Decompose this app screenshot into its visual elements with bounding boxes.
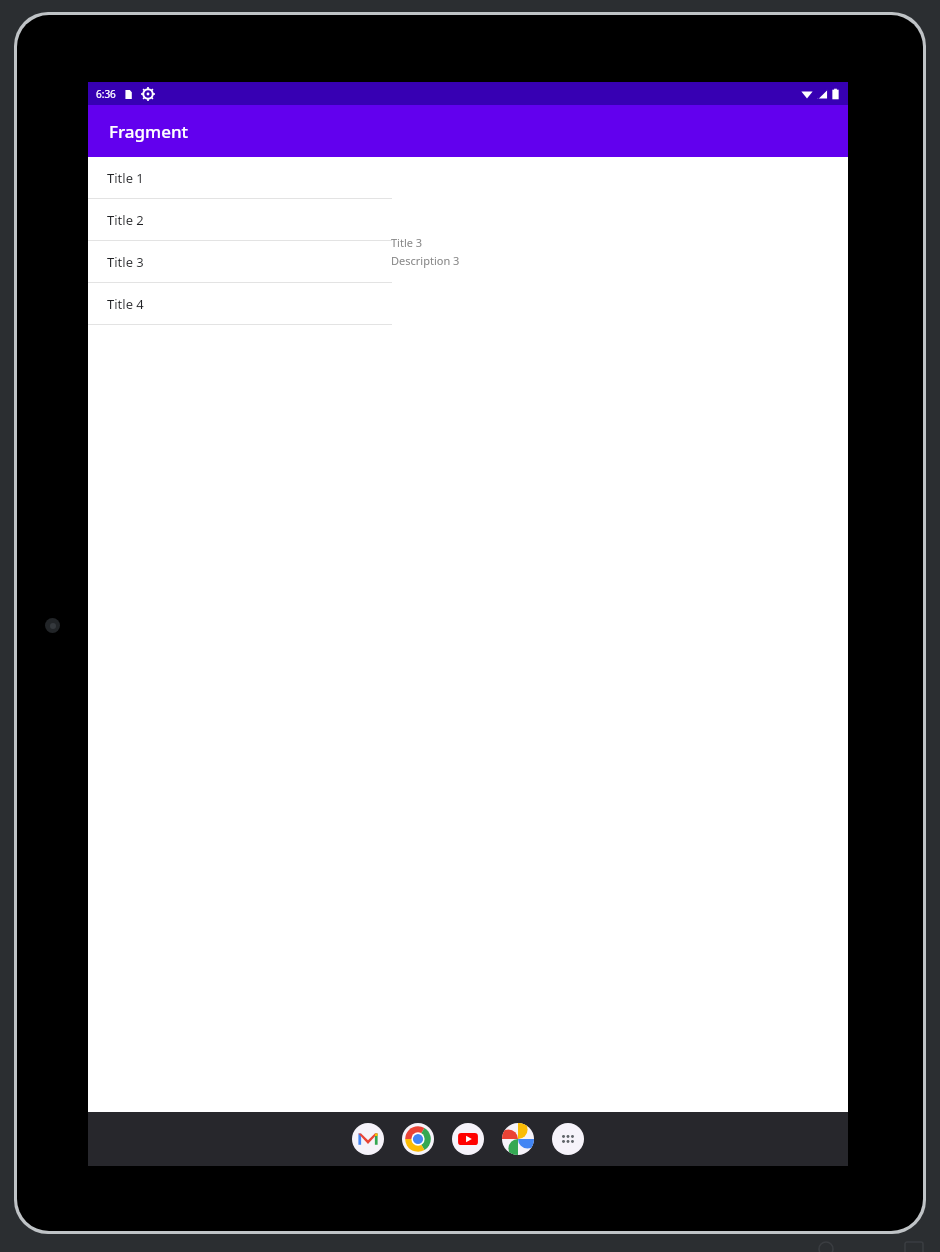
button[interactable]: Title 3: [88, 241, 392, 283]
staticText: Title 3: [391, 235, 423, 250]
button[interactable]: Photos: [502, 1123, 534, 1155]
button[interactable]: Title 4: [88, 283, 392, 325]
staticText: Description 3: [391, 253, 460, 268]
button[interactable]: YouTube: [452, 1123, 484, 1155]
button[interactable]: Chrome: [402, 1123, 434, 1155]
button[interactable]: Title 1: [88, 157, 392, 199]
staticText: Title 4: [107, 295, 144, 313]
staticText: 6:36: [96, 87, 116, 101]
staticText: Title 2: [107, 211, 144, 229]
staticText: Title 1: [107, 169, 144, 187]
staticText: Title 3: [107, 253, 144, 271]
staticText: Fragment: [109, 120, 189, 143]
button[interactable]: Gmail: [352, 1123, 384, 1155]
button[interactable]: All apps: [552, 1123, 584, 1155]
button[interactable]: Title 2: [88, 199, 392, 241]
